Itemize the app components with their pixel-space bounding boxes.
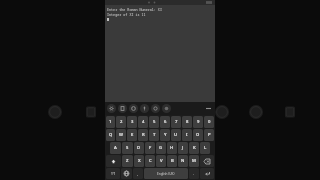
button[interactable]: Shift [106,155,121,167]
staticText: J [182,145,184,151]
button[interactable]: 1 [106,116,115,128]
button[interactable]: K [189,142,199,154]
staticText: P [208,132,211,138]
button[interactable]: H [167,142,177,154]
button[interactable]: Settings [107,104,116,113]
staticText: Enter the Roman Numeral: XI [107,7,162,12]
button[interactable]: More [204,104,213,113]
staticText: Y [164,132,167,138]
button[interactable]: !?1 [106,168,120,179]
staticText: S [126,145,129,151]
staticText: I [186,132,188,138]
button[interactable]: 0 [204,116,214,128]
staticText: C [149,158,152,164]
button[interactable]: Clipboard [118,104,127,113]
staticText: !?1 [111,171,116,176]
button[interactable]: E [127,129,137,141]
staticText: V [160,158,163,164]
staticText: Integer of XI is 11 [107,12,146,17]
button[interactable]: Y [160,129,170,141]
button[interactable]: Enter [200,168,214,179]
staticText: X [138,158,141,164]
button[interactable]: T [149,129,159,141]
button[interactable]: N [178,155,188,167]
staticText: H [170,145,174,151]
button[interactable]: . [189,168,199,179]
button[interactable]: X [134,155,144,167]
staticText: 0 [208,119,211,125]
button[interactable]: F [145,142,155,154]
staticText: F [149,145,152,151]
button[interactable]: Change keyboard language [121,168,132,179]
button[interactable]: I [182,129,192,141]
button[interactable]: W [116,129,126,141]
staticText: . [193,171,195,177]
button[interactable]: Backspace [200,155,214,167]
staticText: T [153,132,156,138]
button[interactable]: S [122,142,133,154]
button[interactable]: 3 [127,116,137,128]
staticText: U [174,132,178,138]
staticText: 3 [131,119,134,125]
staticText: 5 [153,119,156,125]
staticText: English (UK) [157,172,175,176]
staticText: 2 [120,119,123,125]
button[interactable]: 5 [149,116,159,128]
staticText: B [171,158,174,164]
button[interactable]: 9 [193,116,203,128]
staticText: G [159,145,163,151]
button[interactable]: R [138,129,148,141]
staticText: D [137,145,141,151]
staticText: W [119,132,123,138]
button[interactable]: A [110,142,121,154]
button[interactable]: 7 [171,116,181,128]
button[interactable]: P [204,129,214,141]
staticText: 1 [109,119,112,125]
staticText: A [114,145,117,151]
button[interactable]: Space [144,168,188,179]
button[interactable]: L [200,142,210,154]
staticText: Q [109,132,113,138]
button[interactable]: D [134,142,144,154]
button[interactable]: , [133,168,143,179]
button[interactable]: Theme [162,104,171,113]
button[interactable]: 8 [182,116,192,128]
button[interactable]: 4 [138,116,148,128]
staticText: K [193,145,196,151]
button[interactable]: J [178,142,188,154]
staticText: 7 [175,119,178,125]
button[interactable]: U [171,129,181,141]
button[interactable]: C [145,155,155,167]
button[interactable]: O [193,129,203,141]
button[interactable]: M [189,155,199,167]
button[interactable]: 6 [160,116,170,128]
staticText: O [196,132,200,138]
staticText: , [137,171,139,177]
staticText: 8 [186,119,189,125]
staticText: Z [126,158,129,164]
staticText: 6 [164,119,167,125]
staticText: E [131,132,134,138]
button[interactable]: Emoji [129,104,138,113]
button[interactable]: 2 [116,116,126,128]
button[interactable]: G [156,142,166,154]
staticText: R [142,132,145,138]
button[interactable]: B [167,155,177,167]
staticText: 9 [197,119,200,125]
staticText: 4 [142,119,145,125]
staticText: N [181,158,185,164]
button[interactable]: Voice input [140,104,149,113]
staticText: L [204,145,207,151]
button[interactable]: Q [106,129,115,141]
staticText: M [192,158,196,164]
button[interactable]: Sticker [151,104,160,113]
button[interactable]: V [156,155,166,167]
button[interactable]: Z [122,155,133,167]
